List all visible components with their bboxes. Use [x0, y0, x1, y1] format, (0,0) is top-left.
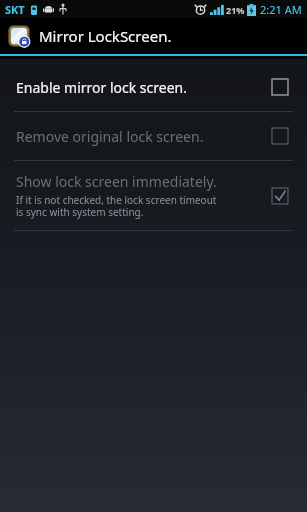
staticText: Enable mirror lock screen. [16, 78, 187, 97]
staticText: Remove original lock screen. [16, 127, 204, 146]
staticText: If it is not checked, the lock screen ti… [16, 193, 217, 219]
button[interactable]: Checked [267, 183, 293, 209]
staticText: 2:21 AM [260, 2, 302, 17]
button[interactable]: Remove original lock screen. [0, 112, 307, 160]
button[interactable]: Mirror LockScreen. [0, 18, 307, 54]
button[interactable]: Enable mirror lock screen. [0, 63, 307, 111]
staticText: 21% [226, 4, 245, 16]
staticText: Mirror LockScreen. [39, 26, 172, 46]
button[interactable]: Show lock screen immediately. [0, 161, 307, 230]
staticText: SKT [5, 2, 25, 17]
button[interactable]: Unchecked [267, 74, 293, 100]
button[interactable]: Unchecked [267, 123, 293, 149]
staticText: Show lock screen immediately. [16, 172, 217, 191]
